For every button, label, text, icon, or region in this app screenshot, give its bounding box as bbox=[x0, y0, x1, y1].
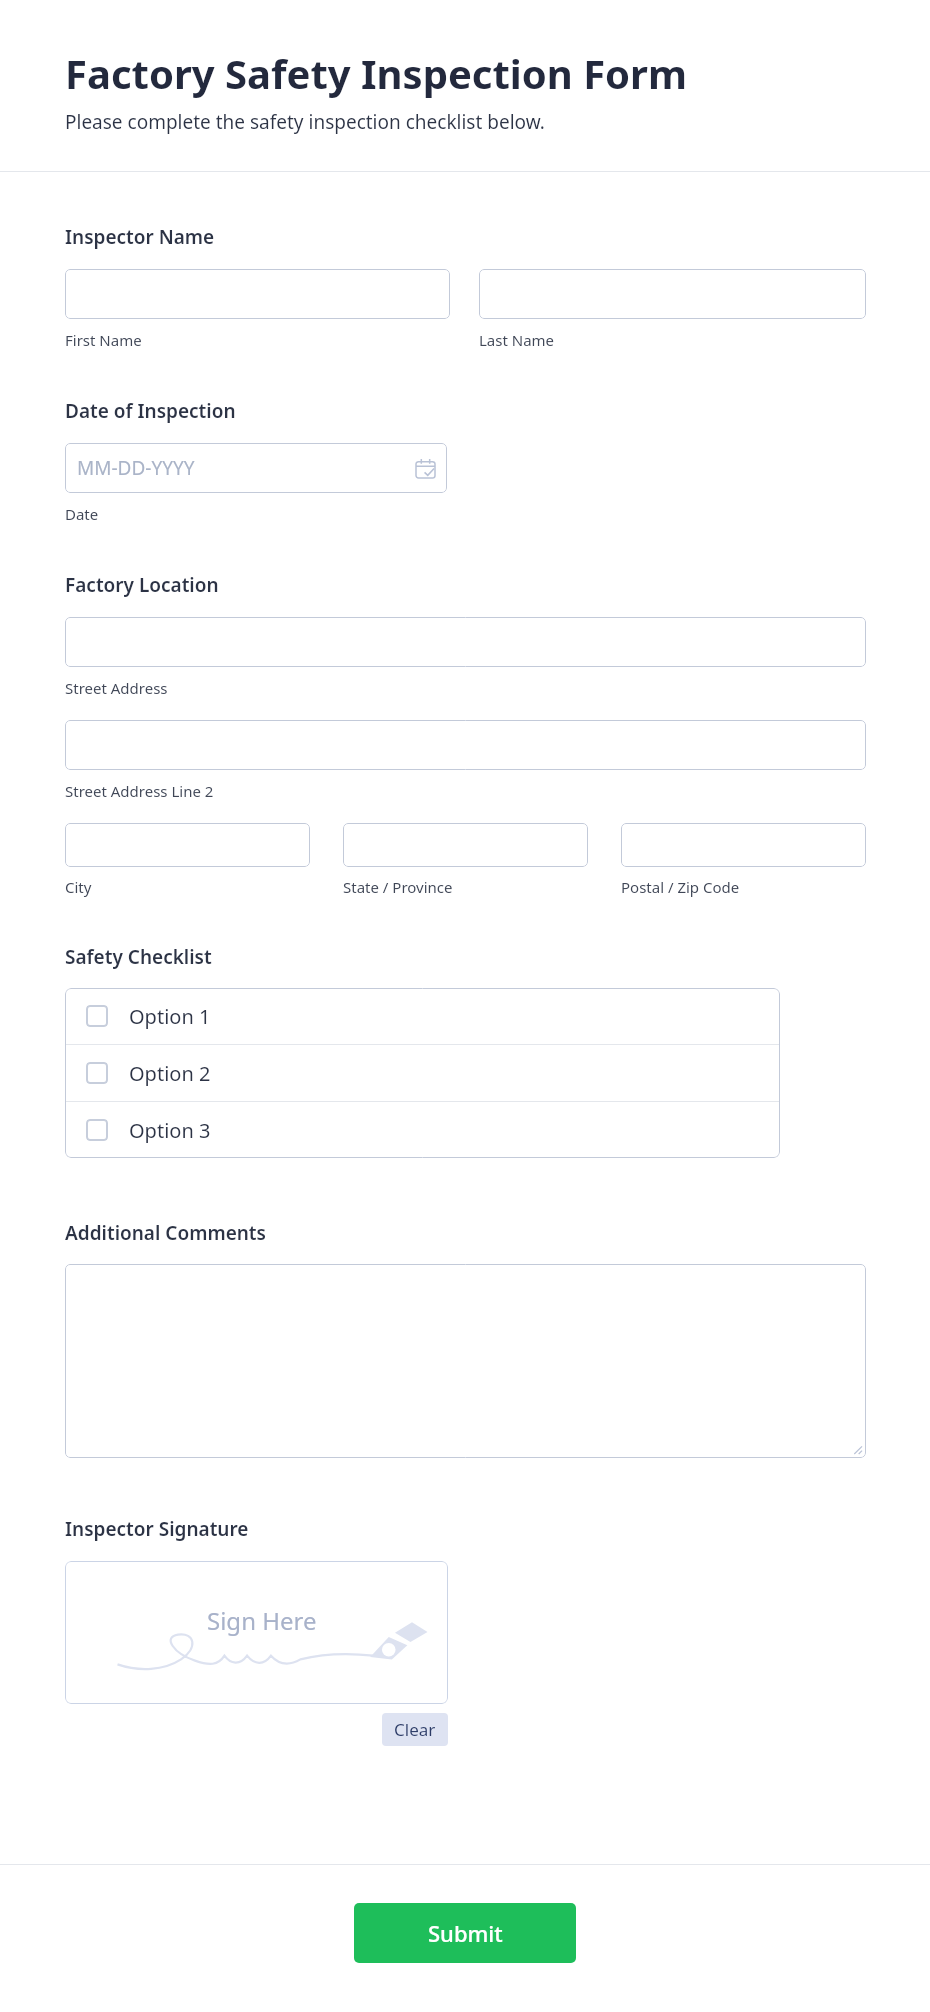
staticText: Safety Checklist bbox=[65, 944, 212, 970]
other: Pick date bbox=[416, 459, 435, 478]
staticText: MM-DD-YYYY bbox=[77, 455, 195, 481]
staticText: Last Name bbox=[479, 330, 555, 350]
button[interactable] bbox=[479, 269, 866, 319]
staticText: Option 1 bbox=[129, 1003, 211, 1030]
button[interactable]: Option 1 bbox=[65, 988, 780, 1044]
staticText: Inspector Signature bbox=[65, 1516, 249, 1542]
staticText: Date of Inspection bbox=[65, 398, 236, 424]
staticText: Factory Location bbox=[65, 572, 219, 598]
staticText: Please complete the safety inspection ch… bbox=[65, 109, 545, 135]
staticText: Postal / Zip Code bbox=[621, 877, 740, 897]
staticText: Inspector Name bbox=[65, 224, 215, 250]
button[interactable] bbox=[65, 720, 866, 770]
staticText: Sign Here bbox=[207, 1604, 317, 1637]
button[interactable]: Option 3 bbox=[65, 1102, 780, 1158]
button[interactable]: Clear bbox=[382, 1713, 448, 1746]
button[interactable] bbox=[65, 1264, 866, 1458]
staticText: Additional Comments bbox=[65, 1220, 266, 1246]
button[interactable] bbox=[65, 823, 310, 867]
staticText: Option 2 bbox=[129, 1060, 211, 1087]
staticText: Date bbox=[65, 504, 99, 524]
staticText: Factory Safety Inspection Form bbox=[65, 46, 687, 100]
button[interactable]: Option 2 bbox=[65, 1045, 780, 1101]
staticText: State / Province bbox=[343, 877, 453, 897]
staticText: Submit bbox=[428, 1918, 503, 1948]
button[interactable]: Sign Here bbox=[65, 1561, 448, 1704]
button[interactable] bbox=[621, 823, 866, 867]
button[interactable] bbox=[65, 617, 866, 667]
staticText: Clear bbox=[394, 1718, 436, 1741]
staticText: City bbox=[65, 877, 92, 897]
staticText: Option 3 bbox=[129, 1117, 211, 1144]
button[interactable] bbox=[343, 823, 588, 867]
button[interactable]: Submit bbox=[354, 1903, 576, 1963]
staticText: Street Address Line 2 bbox=[65, 781, 214, 801]
button[interactable] bbox=[65, 269, 450, 319]
staticText: Street Address bbox=[65, 678, 168, 698]
button[interactable]: MM-DD-YYYY bbox=[65, 443, 447, 493]
staticText: First Name bbox=[65, 330, 142, 350]
